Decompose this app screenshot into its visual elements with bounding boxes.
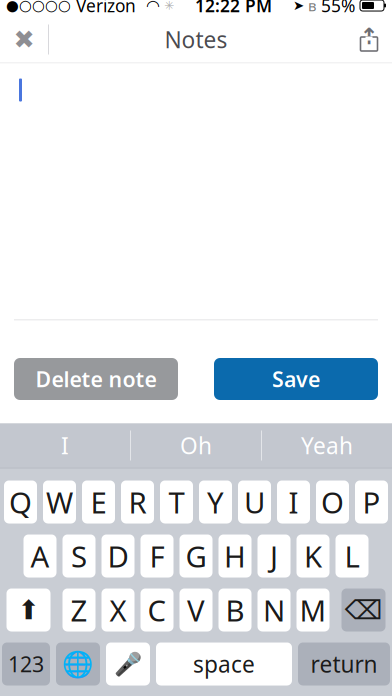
button[interactable]: O [316, 480, 349, 523]
button[interactable]: Save [214, 358, 378, 400]
button[interactable]: return [298, 642, 390, 685]
button[interactable]: X [101, 588, 134, 631]
button[interactable]: I [277, 480, 310, 523]
staticText: ⬆ [17, 595, 39, 625]
staticText: Oh [180, 430, 212, 460]
staticText: G [185, 536, 206, 575]
staticText: S [71, 536, 87, 575]
button[interactable]: Next keyboard [56, 642, 100, 685]
button[interactable]: T [160, 480, 193, 523]
button[interactable]: F [140, 534, 173, 577]
staticText: Notes [164, 24, 227, 54]
button[interactable]: R [121, 480, 154, 523]
button[interactable]: L [335, 534, 368, 577]
staticText: Y [207, 482, 224, 521]
button[interactable]: P [355, 480, 388, 523]
button[interactable]: Numbers [2, 642, 50, 685]
staticText: T [168, 482, 184, 521]
staticText: U [244, 482, 265, 521]
staticText: 🎤 [114, 651, 142, 677]
button[interactable]: Delete [341, 588, 385, 631]
button[interactable]: Delete note [14, 358, 178, 400]
staticText: 🌐 [62, 649, 94, 678]
button[interactable]: H [218, 534, 251, 577]
staticText: 123 [8, 650, 44, 678]
staticText: K [304, 536, 322, 575]
button[interactable]: Z [62, 588, 95, 631]
button[interactable]: S [62, 534, 95, 577]
staticText: H [224, 536, 246, 575]
staticText: J [270, 536, 278, 575]
button[interactable]: W [43, 480, 76, 523]
staticText: ✖ [13, 25, 34, 54]
staticText: X [109, 590, 126, 629]
button[interactable]: Yeah [262, 423, 392, 467]
button[interactable]: U [238, 480, 271, 523]
staticText: Save [272, 365, 320, 393]
button[interactable]: space [156, 642, 292, 685]
staticText: W [46, 482, 73, 521]
staticText: ➤ [293, 0, 304, 13]
staticText: D [107, 536, 128, 575]
button[interactable]: D [101, 534, 134, 577]
staticText: V [187, 590, 205, 629]
button[interactable]: N [257, 588, 290, 631]
staticText: ●○○○○ [6, 0, 71, 14]
button[interactable]: Share [346, 16, 392, 62]
staticText: Yeah [301, 430, 353, 460]
staticText: I [288, 482, 298, 521]
staticText: I [61, 430, 69, 460]
staticText: A [30, 536, 49, 575]
staticText: M [299, 590, 326, 629]
staticText: L [344, 536, 359, 575]
button[interactable]: Q [4, 480, 37, 523]
button[interactable]: M [296, 588, 329, 631]
staticText: ⌫ [344, 595, 382, 625]
staticText: Delete note [35, 365, 156, 393]
button[interactable]: Dictate [106, 642, 150, 685]
staticText: ʙ [304, 0, 316, 15]
button[interactable]: A [23, 534, 56, 577]
staticText: E [90, 482, 106, 521]
button[interactable]: Y [199, 480, 232, 523]
staticText: return [310, 649, 377, 679]
button[interactable]: G [179, 534, 212, 577]
button[interactable]: B [218, 588, 251, 631]
staticText: ✳ [160, 0, 174, 12]
staticText: 12:22 PM [195, 0, 272, 17]
button[interactable]: Close [0, 16, 48, 62]
button[interactable]: C [140, 588, 173, 631]
staticText: N [263, 590, 285, 629]
staticText: space [193, 649, 255, 679]
staticText: P [362, 482, 380, 521]
staticText: Q [9, 482, 32, 521]
staticText: C [147, 590, 166, 629]
staticText: Verizon [71, 0, 136, 17]
staticText: R [128, 482, 146, 521]
button[interactable]: J [257, 534, 290, 577]
button[interactable]: E [82, 480, 115, 523]
button[interactable]: Oh [131, 423, 261, 467]
staticText: Z [70, 590, 87, 629]
button[interactable]: Shift [6, 588, 50, 631]
staticText: ↑ [359, 24, 378, 49]
button[interactable]: I [0, 423, 130, 467]
staticText: O [321, 482, 344, 521]
button[interactable]: K [296, 534, 329, 577]
staticText: B [225, 590, 244, 629]
staticText: 55% [316, 0, 360, 17]
staticText: F [149, 536, 164, 575]
button[interactable]: V [179, 588, 212, 631]
staticText: ◠ [136, 0, 160, 15]
